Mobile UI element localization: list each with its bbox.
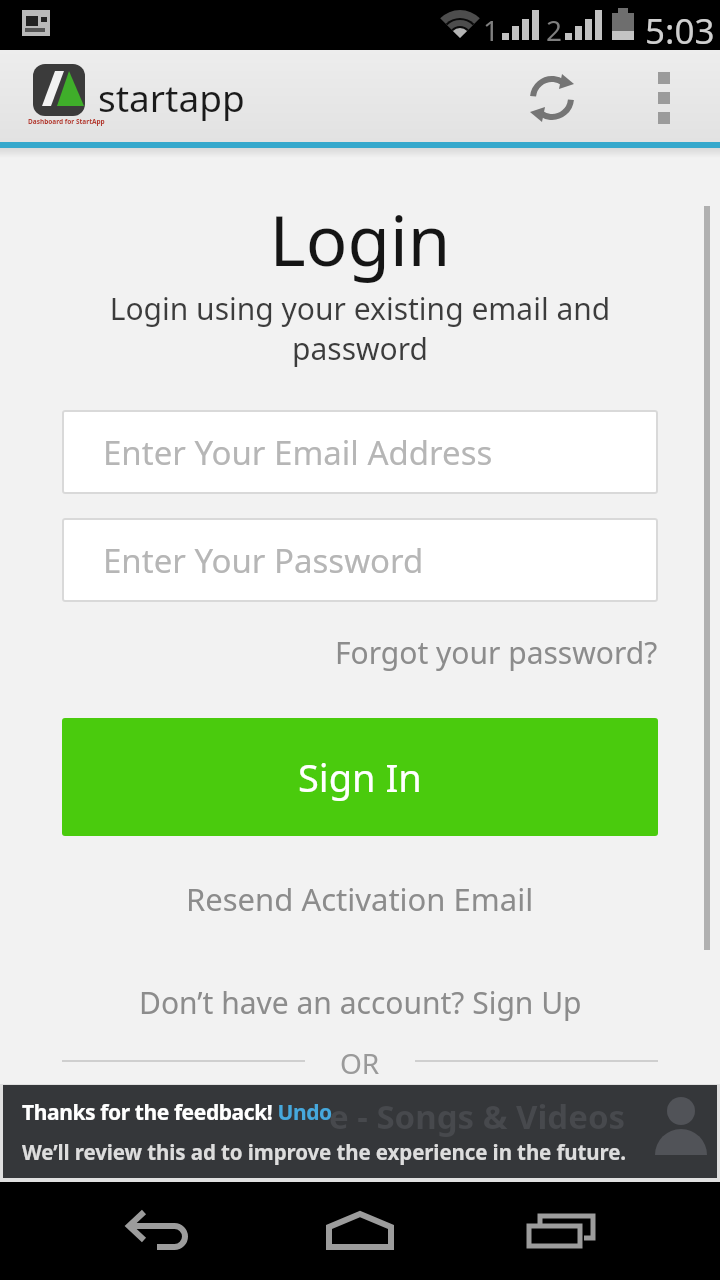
- staticText: Enter Your Email Address: [103, 430, 493, 475]
- button[interactable]: Enter Your Email Address: [62, 410, 658, 494]
- button[interactable]: Forgot your password?: [0, 632, 658, 673]
- staticText: Don’t have an account? Sign Up: [139, 982, 582, 1023]
- staticText: Dashboard for StartApp: [28, 117, 105, 126]
- staticText: e - Songs & Videos: [329, 1094, 626, 1139]
- staticText: Forgot your password?: [335, 632, 658, 673]
- button[interactable]: [636, 62, 692, 134]
- staticText: OR: [340, 1044, 380, 1082]
- staticText: Resend Activation Email: [186, 878, 534, 920]
- button[interactable]: Thanks for the feedback! Undo: [22, 1098, 332, 1127]
- button[interactable]: [100, 1182, 220, 1280]
- button[interactable]: Don’t have an account? Sign Up: [0, 982, 720, 1023]
- staticText: Login using your existing email and pass…: [0, 288, 720, 369]
- button[interactable]: Enter Your Password: [62, 518, 658, 602]
- button[interactable]: [300, 1182, 420, 1280]
- staticText: 1: [483, 11, 500, 49]
- button[interactable]: [500, 1182, 620, 1280]
- staticText: 5:03: [645, 7, 715, 55]
- staticText: Login: [0, 192, 720, 286]
- staticText: Sign In: [298, 751, 422, 803]
- staticText: 2: [546, 11, 563, 49]
- staticText: Enter Your Password: [103, 538, 424, 583]
- staticText: startapp: [98, 72, 245, 122]
- button[interactable]: Sign In: [62, 718, 658, 836]
- button[interactable]: Resend Activation Email: [0, 878, 720, 920]
- button[interactable]: [516, 62, 588, 134]
- staticText: We’ll review this ad to improve the expe…: [22, 1138, 627, 1166]
